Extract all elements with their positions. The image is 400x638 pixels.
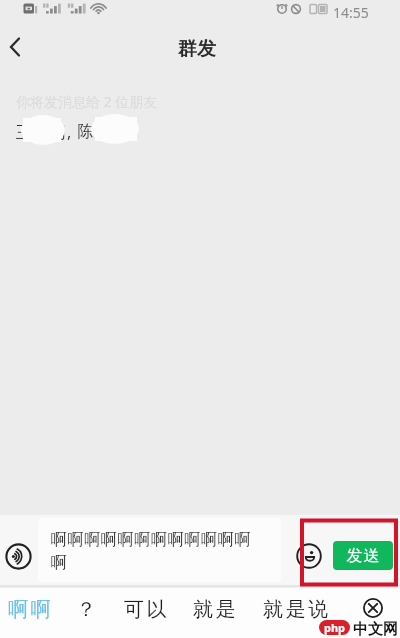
staticText: 就是 — [193, 597, 239, 622]
staticText: 陈小红 — [77, 122, 128, 142]
button[interactable]: 啊啊啊啊啊啊啊啊啊啊啊啊啊 — [38, 518, 281, 582]
button[interactable]: 就是 — [193, 593, 239, 625]
staticText: 14:55 — [333, 3, 369, 22]
staticText: 王小明, — [16, 121, 73, 143]
button[interactable]: 就是说 — [263, 593, 331, 625]
staticText: 群发 — [178, 37, 216, 61]
button[interactable]: 可以 — [124, 593, 170, 625]
staticText: 啊啊啊啊啊啊啊啊啊啊啊啊啊 — [51, 530, 257, 573]
button[interactable]: 啊啊 — [8, 593, 54, 625]
staticText: ？ — [76, 597, 99, 622]
staticText: php — [324, 620, 346, 635]
button[interactable]: ？ — [76, 593, 99, 625]
button[interactable]: Close suggestions — [359, 594, 387, 622]
staticText: 啊啊 — [8, 597, 54, 622]
button[interactable]: Back — [0, 29, 33, 65]
staticText: 可以 — [124, 597, 170, 622]
staticText: 你将发消息给 2 位朋友 — [16, 92, 158, 111]
staticText: 就是说 — [263, 597, 331, 622]
button[interactable]: 发送 — [333, 541, 393, 570]
staticText: 发送 — [346, 546, 380, 566]
button[interactable]: Switch to voice message — [3, 541, 34, 572]
button[interactable]: Emoji — [294, 541, 324, 571]
staticText: 中文网 — [353, 620, 398, 638]
